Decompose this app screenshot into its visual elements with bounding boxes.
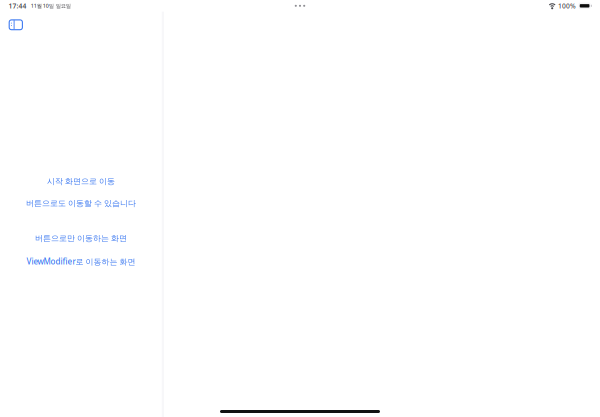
staticText: 버튼으로만 이동하는 화면 bbox=[35, 233, 127, 243]
staticText: 버튼으로도 이동할 수 있습니다 bbox=[26, 198, 136, 208]
staticText: 11월 10일 일요일 bbox=[31, 2, 71, 9]
staticText: ViewModifier로 이동하는 화면 bbox=[26, 256, 135, 267]
button[interactable]: 버튼으로도 이동할 수 있습니다 bbox=[0, 197, 162, 209]
button[interactable]: Multitasking Controls bbox=[280, 0, 320, 12]
button[interactable]: ViewModifier로 이동하는 화면 bbox=[0, 255, 162, 267]
button[interactable]: 버튼으로만 이동하는 화면 bbox=[0, 232, 162, 244]
staticText: 100% bbox=[558, 1, 576, 10]
button[interactable]: 시작 화면으로 이동 bbox=[0, 175, 162, 187]
staticText: 시작 화면으로 이동 bbox=[47, 176, 115, 186]
button[interactable]: Show Sidebar bbox=[0, 12, 29, 36]
staticText: 17:44 bbox=[8, 1, 26, 10]
